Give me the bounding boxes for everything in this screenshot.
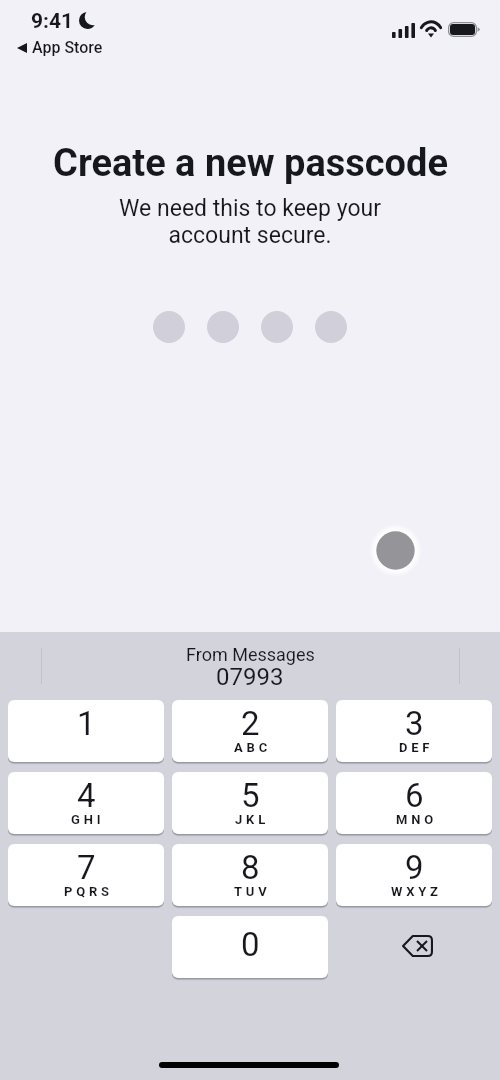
staticText: WXYZ <box>391 884 442 899</box>
staticText: JKL <box>235 812 269 827</box>
button[interactable]: 8 <box>172 844 328 906</box>
staticText: PQRS <box>64 884 113 899</box>
button[interactable]: 0 <box>172 916 328 978</box>
button[interactable]: 3 <box>336 700 492 762</box>
staticText: DEF <box>399 740 434 755</box>
staticText: MNO <box>396 812 437 827</box>
staticText: 7 <box>77 848 96 887</box>
staticText: Create a new passcode <box>53 141 448 186</box>
staticText: 1 <box>77 704 96 743</box>
staticText: 07993 <box>216 663 284 691</box>
staticText: 5 <box>241 776 260 815</box>
staticText: 4 <box>77 776 96 815</box>
button[interactable]: 5 <box>172 772 328 834</box>
staticText: ABC <box>234 740 271 755</box>
button[interactable]: 1 <box>8 700 164 762</box>
staticText: 8 <box>241 848 260 887</box>
button[interactable]: Delete <box>336 916 492 978</box>
staticText: GHI <box>71 812 105 827</box>
staticText: 9:41 <box>31 9 74 34</box>
staticText: 6 <box>405 776 424 815</box>
staticText: From Messages <box>186 644 315 665</box>
button[interactable]: 2 <box>172 700 328 762</box>
button[interactable]: 7 <box>8 844 164 906</box>
staticText: We need this to keep your account secure… <box>119 195 381 248</box>
staticText: 9 <box>405 848 424 887</box>
staticText: 2 <box>241 704 260 743</box>
staticText: TUV <box>234 884 271 899</box>
staticText: 3 <box>405 704 424 743</box>
staticText: 0 <box>241 925 260 964</box>
button[interactable]: 4 <box>8 772 164 834</box>
staticText: App Store <box>32 38 103 57</box>
button[interactable]: 9 <box>336 844 492 906</box>
button[interactable]: 6 <box>336 772 492 834</box>
